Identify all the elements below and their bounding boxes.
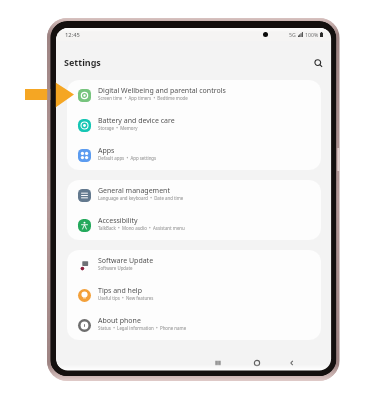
button[interactable]: Software Update (67, 250, 321, 280)
staticText: 5G (289, 31, 296, 38)
staticText: Useful tips • New features (98, 295, 154, 301)
button[interactable]: Tips and help (67, 280, 321, 310)
button[interactable]: Digital Wellbeing and parental controls (67, 80, 321, 110)
staticText: Software Update (98, 256, 154, 266)
staticText: About phone (98, 316, 141, 326)
staticText: Screen time • App timers • Bedtime mode (98, 95, 188, 101)
staticText: Status • Legal information • Phone name (98, 325, 187, 331)
button[interactable]: General management (67, 180, 321, 210)
staticText: Software Update (98, 265, 133, 271)
staticText: Battery and device care (98, 116, 175, 126)
button[interactable]: Back (283, 354, 301, 371)
staticText: Tips and help (98, 286, 142, 296)
staticText: Accessibility (98, 216, 138, 226)
staticText: Apps (98, 146, 115, 156)
staticText: Storage • Memory (98, 125, 138, 131)
staticText: TalkBack • Mono audio • Assistant menu (98, 225, 185, 231)
staticText: Default apps • App settings (98, 155, 157, 161)
staticText: General management (98, 186, 170, 196)
staticText: Language and keyboard • Date and time (98, 195, 184, 201)
button[interactable]: Accessibility (67, 210, 321, 240)
button[interactable]: Home (248, 354, 266, 371)
staticText: 100% (305, 31, 319, 38)
button[interactable]: About phone (67, 310, 321, 340)
button[interactable]: Apps (67, 140, 321, 170)
staticText: 12:45 (65, 31, 80, 39)
button[interactable]: Search (311, 56, 325, 70)
staticText: Digital Wellbeing and parental controls (98, 86, 226, 96)
button[interactable]: Recents (209, 354, 227, 371)
staticText: Settings (64, 56, 101, 68)
button[interactable]: Battery and device care (67, 110, 321, 140)
